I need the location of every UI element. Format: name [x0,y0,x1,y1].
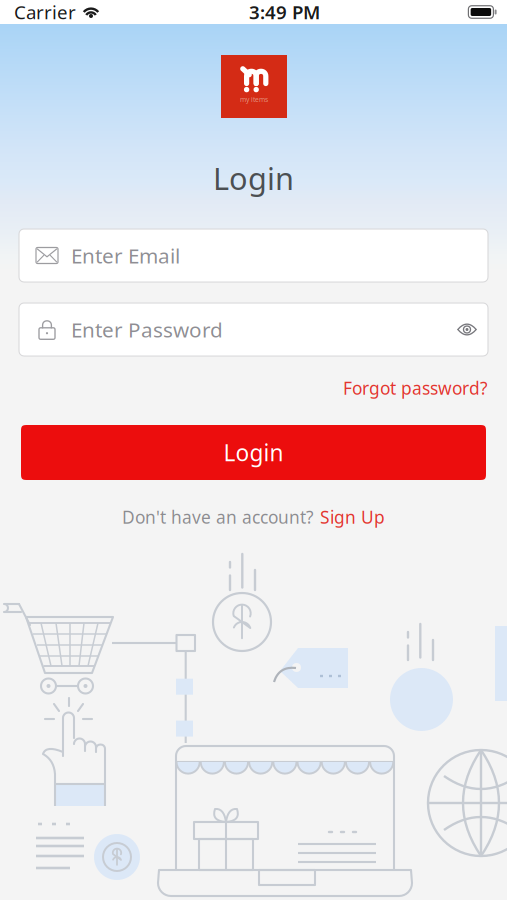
staticText: Forgot password? [343,376,488,399]
button[interactable]: Enter Password [19,303,488,356]
staticText: Carrier [14,0,76,24]
staticText: Enter Password [71,316,223,343]
staticText: Enter Email [71,242,180,269]
button[interactable]: Login [21,425,486,480]
staticText: Login [213,158,294,198]
staticText: Don't have an account? [122,505,314,528]
staticText: Sign Up [320,505,385,528]
button[interactable]: Forgot password? [188,375,488,401]
staticText: Login [223,437,283,467]
staticText: my items [240,95,268,104]
staticText: 3:49 PM [249,0,320,24]
button[interactable]: Sign Up [320,505,385,528]
button[interactable]: Enter Email [19,229,488,282]
